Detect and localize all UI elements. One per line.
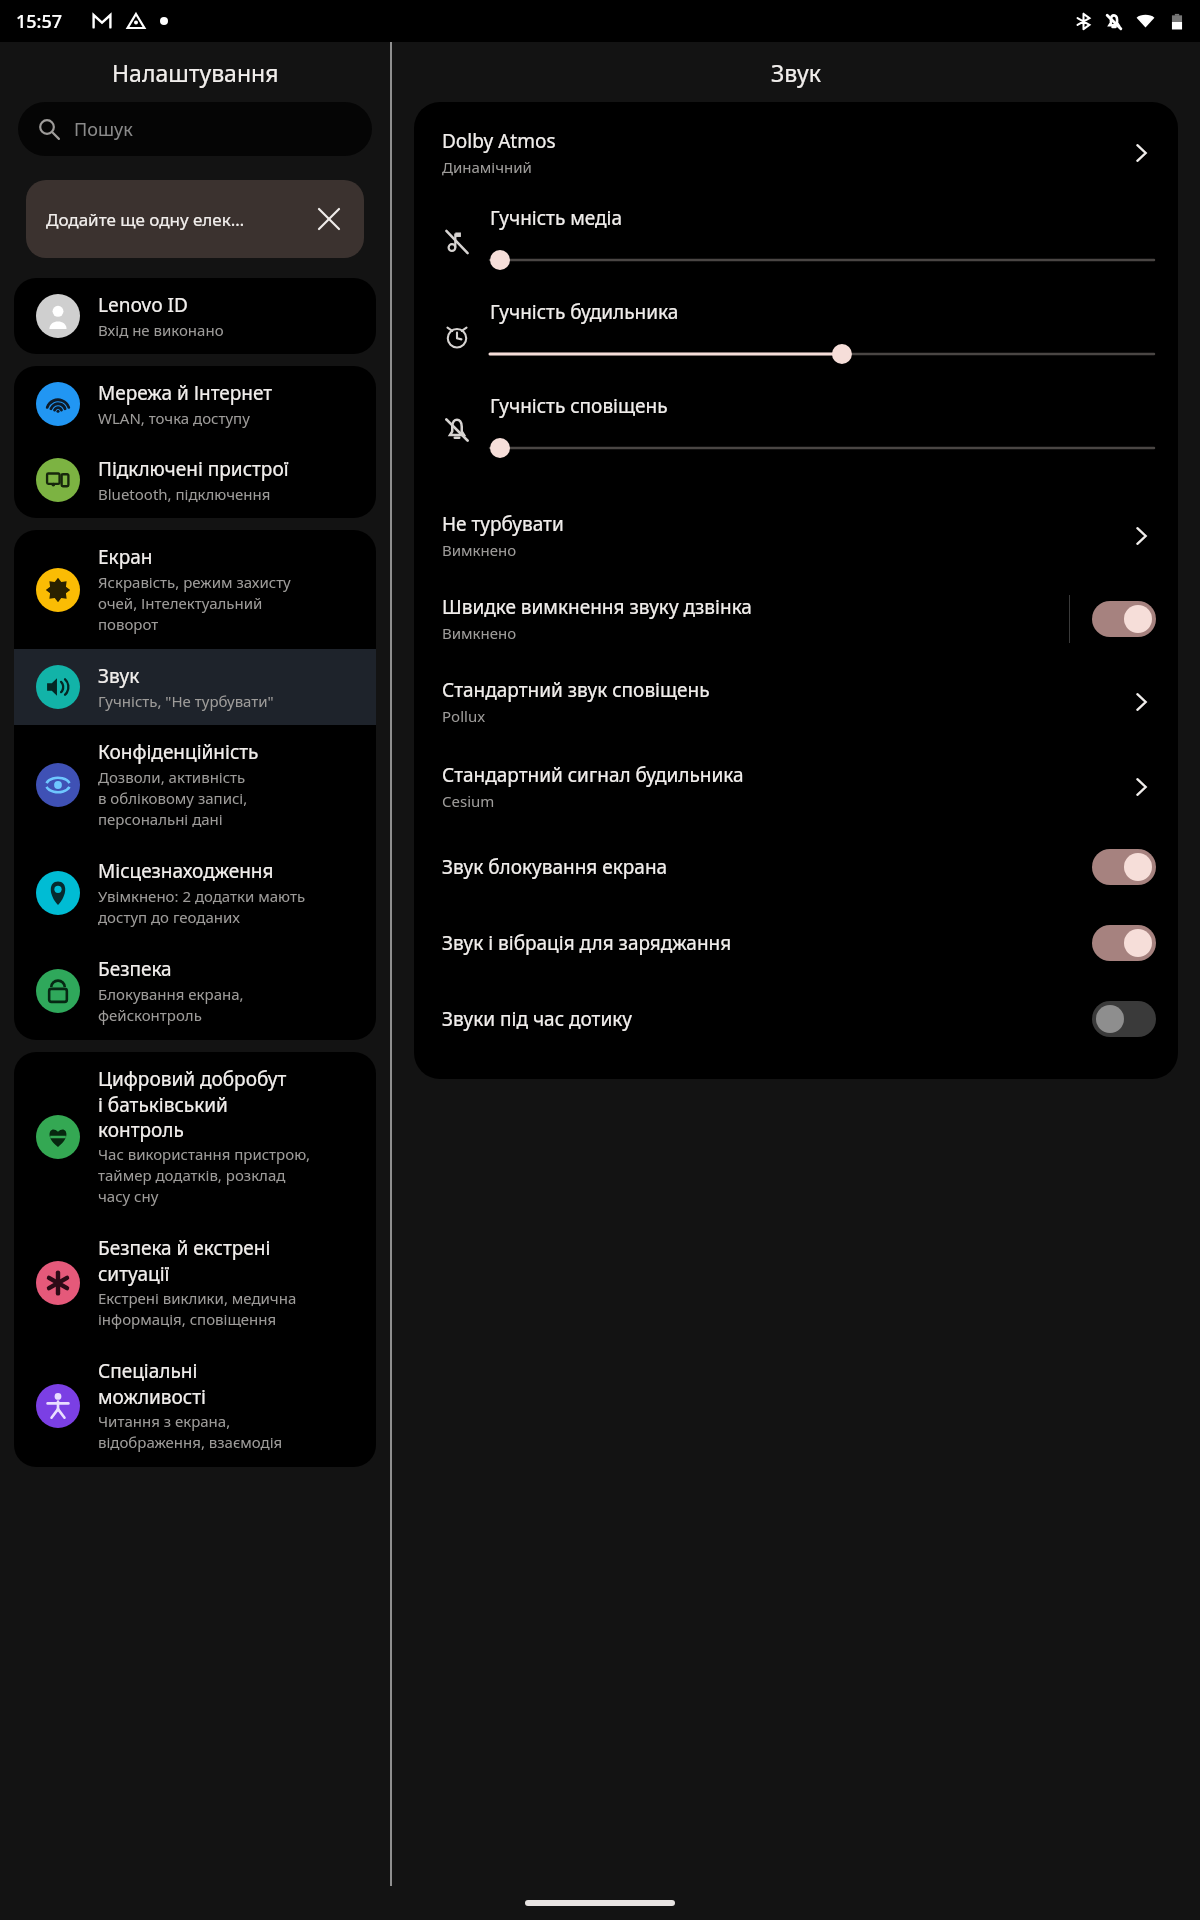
staticText: Звук блокування екрана xyxy=(442,854,1092,880)
staticText: Звук xyxy=(771,57,821,88)
staticText: Налаштування xyxy=(112,57,279,88)
button[interactable]: Пошук xyxy=(18,102,372,156)
button[interactable]: Увімкнено xyxy=(1092,849,1156,885)
staticText: Гучність будильника xyxy=(490,299,679,325)
button[interactable]: Звук і вібрація для заряджання xyxy=(414,905,1178,981)
staticText: Bluetooth, підключення xyxy=(98,484,271,504)
staticText: Читання з екрана, відображення, взаємоді… xyxy=(98,1411,283,1453)
staticText: Dolby Atmos xyxy=(442,128,556,154)
staticText: Швидке вимкнення звуку дзвінка xyxy=(442,594,752,620)
button[interactable]: Не турбувати xyxy=(414,503,1178,578)
staticText: Спеціальні можливості xyxy=(98,1358,206,1409)
staticText: WLAN, точка доступу xyxy=(98,408,250,428)
staticText: Конфіденційність xyxy=(98,739,259,765)
button[interactable]: Гучність сповіщень xyxy=(414,383,1178,477)
staticText: Цифровий добробут і батьківський контрол… xyxy=(98,1066,287,1142)
button[interactable]: Безпека xyxy=(14,942,376,1040)
button[interactable]: Lenovo ID xyxy=(14,278,376,354)
button[interactable]: Спеціальні можливості xyxy=(14,1344,376,1467)
staticText: Додайте ще одну елек… xyxy=(46,208,314,231)
staticText: Яскравість, режим захисту очей, Інтелект… xyxy=(98,572,291,635)
staticText: Pollux xyxy=(442,706,486,726)
staticText: Звуки під час дотику xyxy=(442,1006,1092,1032)
button[interactable]: Безпека й екстрені ситуації xyxy=(14,1221,376,1344)
staticText: Вимкнено xyxy=(442,540,517,560)
staticText: Блокування екрана, фейсконтроль xyxy=(98,984,244,1026)
staticText: Lenovo ID xyxy=(98,292,188,318)
staticText: Пошук xyxy=(74,117,133,142)
button[interactable]: Увімкнено xyxy=(1092,925,1156,961)
staticText: Безпека xyxy=(98,956,172,982)
staticText: Гучність сповіщень xyxy=(490,393,668,419)
button[interactable]: Звук блокування екрана xyxy=(414,829,1178,905)
staticText: Звук xyxy=(98,663,140,689)
staticText: Час використання пристрою, таймер додатк… xyxy=(98,1144,311,1207)
button[interactable]: Цифровий добробут і батьківський контрол… xyxy=(14,1052,376,1221)
button[interactable]: Звук xyxy=(14,649,376,725)
staticText: Вимкнено xyxy=(442,623,517,643)
staticText: Екран xyxy=(98,544,153,570)
staticText: Підключені пристрої xyxy=(98,456,289,482)
staticText: Вхід не виконано xyxy=(98,320,224,340)
staticText: Увімкнено: 2 додатки мають доступ до гео… xyxy=(98,886,306,928)
staticText: Безпека й екстрені ситуації xyxy=(98,1235,271,1286)
button[interactable]: Звуки під час дотику xyxy=(414,981,1178,1057)
staticText: Не турбувати xyxy=(442,511,564,537)
button[interactable]: Увімкнено xyxy=(1092,601,1156,637)
button[interactable]: Закрити xyxy=(314,204,344,234)
staticText: Гучність медіа xyxy=(490,205,623,231)
staticText: Екстрені виклики, медична інформація, сп… xyxy=(98,1288,297,1330)
staticText: Дозволи, активність в обліковому записі,… xyxy=(98,767,248,830)
button[interactable]: Вимкнено xyxy=(1092,1001,1156,1037)
button[interactable]: Додайте ще одну елек… xyxy=(26,180,364,258)
staticText: Стандартний сигнал будильника xyxy=(442,762,744,788)
button[interactable]: Підключені пристрої xyxy=(14,442,376,518)
staticText: Динамічний xyxy=(442,157,532,177)
button[interactable]: Місцезнаходження xyxy=(14,844,376,942)
button[interactable]: Гучність медіа xyxy=(414,195,1178,289)
button[interactable]: Конфіденційність xyxy=(14,725,376,844)
button[interactable]: Швидке вимкнення звуку дзвінка xyxy=(414,578,1178,659)
staticText: Cesium xyxy=(442,791,495,811)
staticText: 15:57 xyxy=(16,9,63,34)
staticText: Гучність, "Не турбувати" xyxy=(98,691,274,711)
staticText: Мережа й Інтернет xyxy=(98,380,273,406)
staticText: Місцезнаходження xyxy=(98,858,274,884)
button[interactable]: Гучність будильника xyxy=(414,289,1178,383)
button[interactable]: Стандартний сигнал будильника xyxy=(414,744,1178,829)
staticText: Звук і вібрація для заряджання xyxy=(442,930,1092,956)
staticText: Стандартний звук сповіщень xyxy=(442,677,710,703)
button[interactable]: Мережа й Інтернет xyxy=(14,366,376,442)
button[interactable]: Стандартний звук сповіщень xyxy=(414,659,1178,744)
button[interactable]: Dolby Atmos xyxy=(414,102,1178,195)
button[interactable]: Екран xyxy=(14,530,376,649)
